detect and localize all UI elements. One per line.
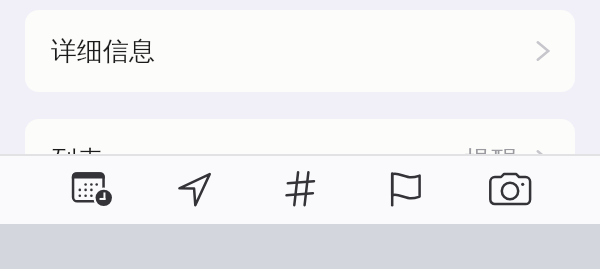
staticText: 详细信息 — [51, 35, 155, 68]
button[interactable]: Flag — [353, 156, 457, 224]
button[interactable]: Calendar with time — [39, 156, 144, 224]
button[interactable]: 详细信息 — [25, 10, 575, 92]
staticText: 列表 — [51, 144, 103, 177]
button[interactable]: Camera — [457, 156, 561, 224]
button[interactable]: Tag — [249, 156, 353, 224]
staticText: 提醒 — [465, 144, 517, 177]
button[interactable]: Navigate — [144, 156, 249, 224]
button[interactable]: 列表 — [25, 119, 575, 201]
